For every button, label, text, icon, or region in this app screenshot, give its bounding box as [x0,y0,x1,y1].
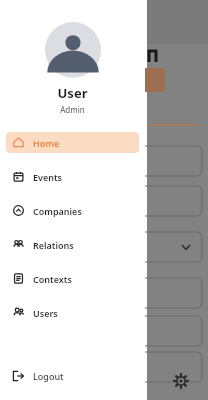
button[interactable]: Logout [0,362,145,390]
staticText: Contexts [33,273,72,285]
button[interactable]: Contexts [6,268,139,289]
staticText: Logout [33,370,64,382]
staticText: Home [33,137,60,149]
button[interactable]: Relations [6,234,139,255]
button[interactable]: Companies [6,200,139,221]
button[interactable]: Settings [170,370,192,392]
staticText: Events [33,171,63,183]
staticText: Companies [33,205,82,217]
button[interactable]: Home [6,132,139,153]
staticText: Relations [33,239,74,251]
button[interactable]: Events [6,166,139,187]
staticText: User [0,84,145,102]
staticText: Admin [0,104,145,115]
button[interactable]: Users [6,302,139,323]
staticText: Users [33,307,58,319]
